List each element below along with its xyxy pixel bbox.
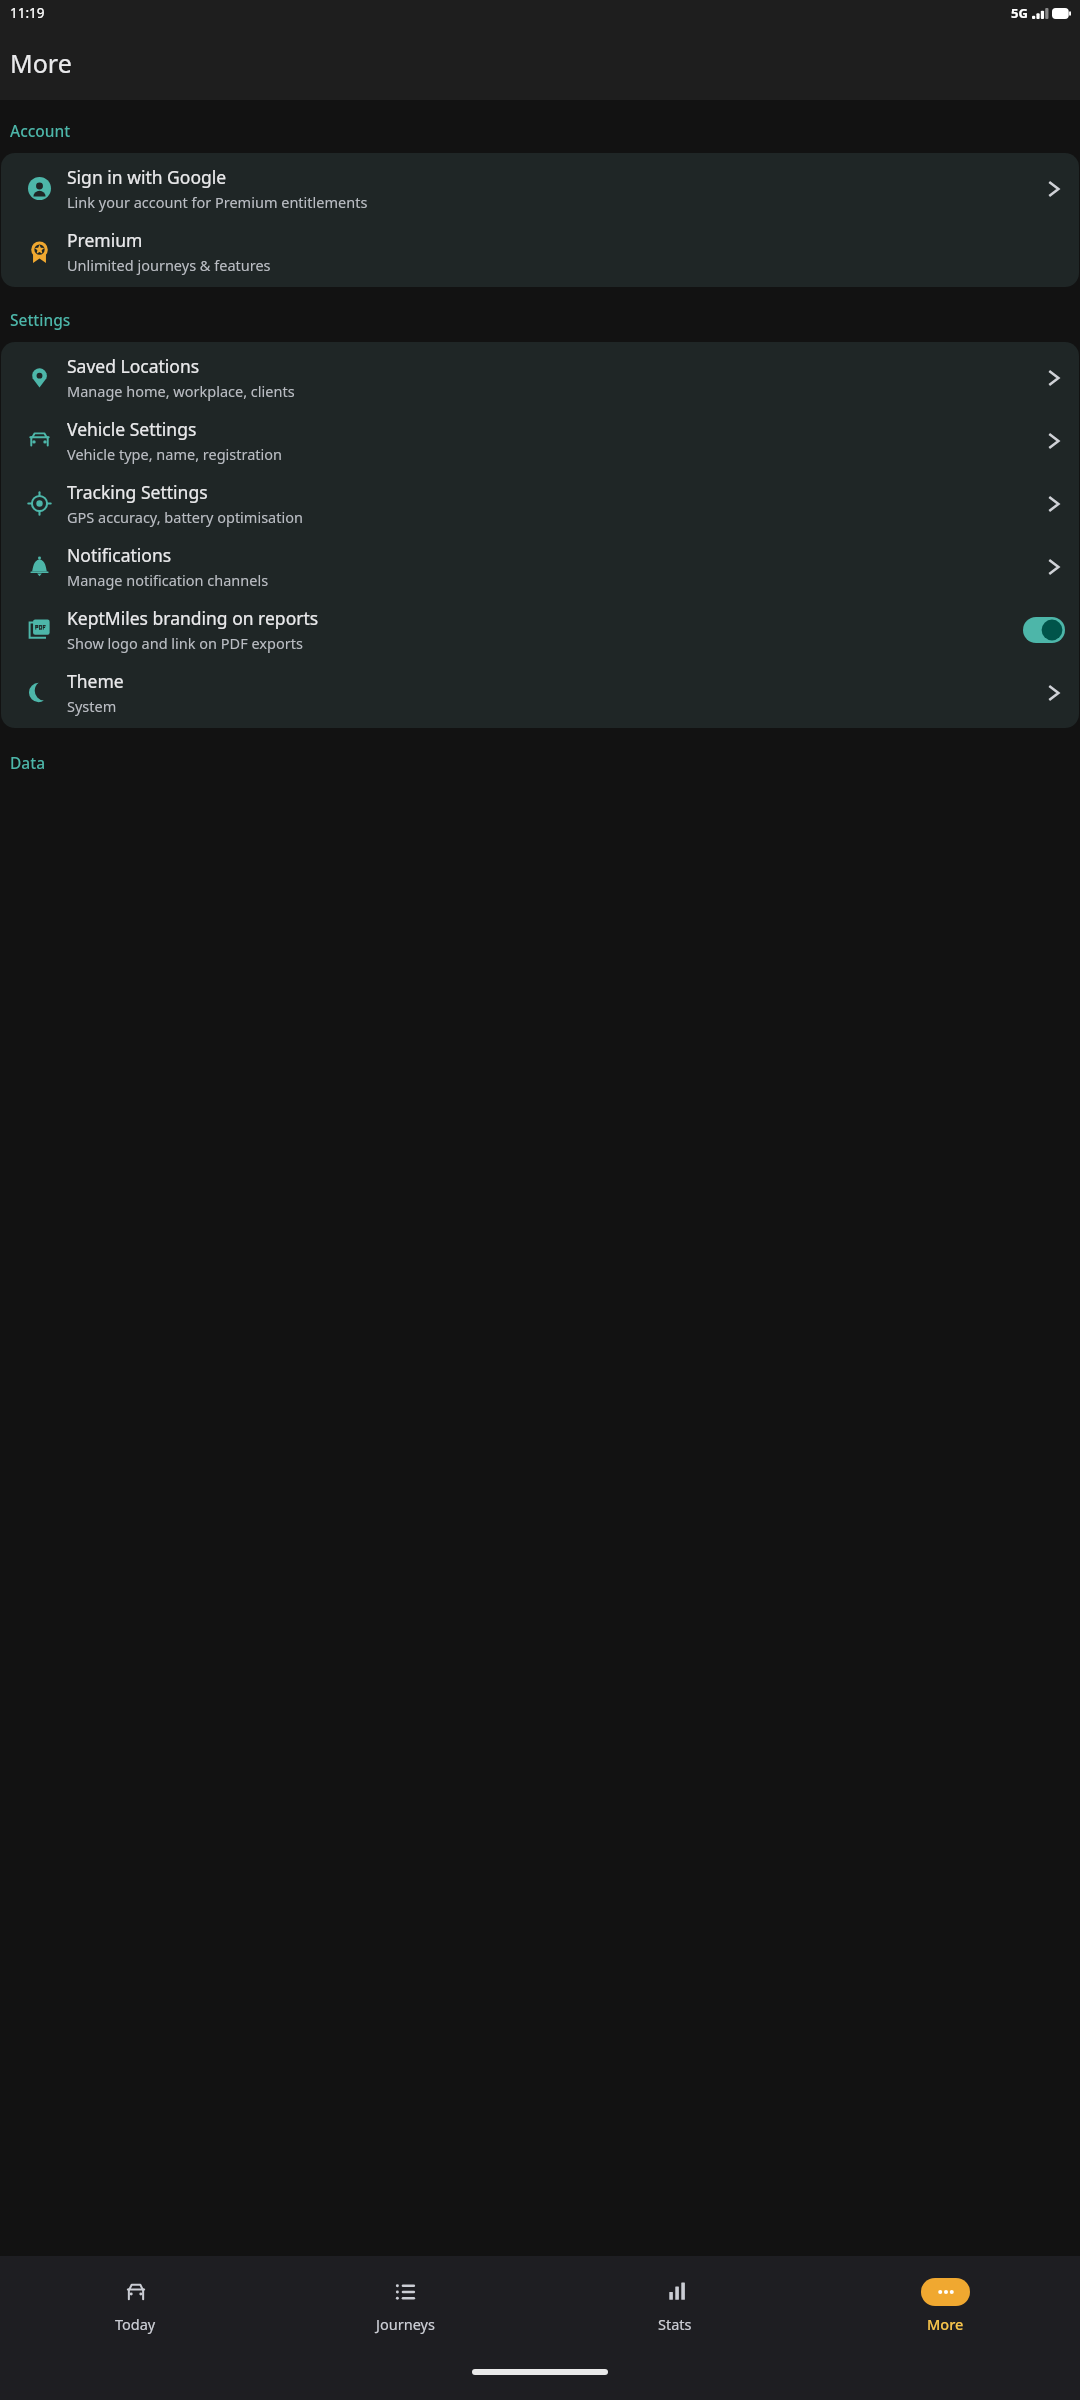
- staticText: Settings: [10, 309, 71, 330]
- staticText: Data: [10, 752, 45, 773]
- button[interactable]: KeptMiles branding on reports: [1, 598, 1079, 661]
- staticText: Link your account for Premium entitlemen…: [67, 192, 368, 212]
- button[interactable]: Toggle branding: [1023, 617, 1065, 643]
- staticText: Unlimited journeys & features: [67, 255, 271, 275]
- button[interactable]: Saved Locations: [1, 346, 1079, 409]
- staticText: KeptMiles branding on reports: [67, 606, 319, 630]
- button[interactable]: Sign in with Google: [1, 157, 1079, 220]
- staticText: Tracking Settings: [67, 480, 208, 504]
- staticText: Vehicle Settings: [67, 417, 197, 441]
- staticText: Notifications: [67, 543, 172, 567]
- staticText: 11:19: [10, 4, 45, 22]
- button[interactable]: Theme: [1, 661, 1079, 724]
- staticText: Stats: [658, 2314, 692, 2334]
- staticText: Manage home, workplace, clients: [67, 381, 295, 401]
- staticText: Vehicle type, name, registration: [67, 444, 283, 464]
- button[interactable]: Journeys: [270, 2256, 540, 2356]
- button[interactable]: More: [810, 2256, 1080, 2356]
- staticText: Saved Locations: [67, 354, 200, 378]
- button[interactable]: Premium: [1, 220, 1079, 283]
- button[interactable]: Tracking Settings: [1, 472, 1079, 535]
- staticText: Sign in with Google: [67, 165, 227, 189]
- staticText: More: [10, 46, 72, 80]
- staticText: Theme: [67, 669, 124, 693]
- staticText: Journeys: [376, 2314, 435, 2334]
- button[interactable]: Stats: [540, 2256, 810, 2356]
- button[interactable]: Today: [0, 2256, 270, 2356]
- button[interactable]: Notifications: [1, 535, 1079, 598]
- other: More: [934, 2280, 958, 2304]
- staticText: Today: [115, 2314, 156, 2334]
- staticText: More: [927, 2314, 964, 2334]
- button[interactable]: Vehicle Settings: [1, 409, 1079, 472]
- staticText: 5G: [1011, 4, 1028, 22]
- staticText: GPS accuracy, battery optimisation: [67, 507, 303, 527]
- staticText: Manage notification channels: [67, 570, 269, 590]
- staticText: System: [67, 696, 117, 716]
- staticText: Account: [10, 120, 71, 141]
- staticText: Premium: [67, 228, 143, 252]
- staticText: Show logo and link on PDF exports: [67, 633, 303, 653]
